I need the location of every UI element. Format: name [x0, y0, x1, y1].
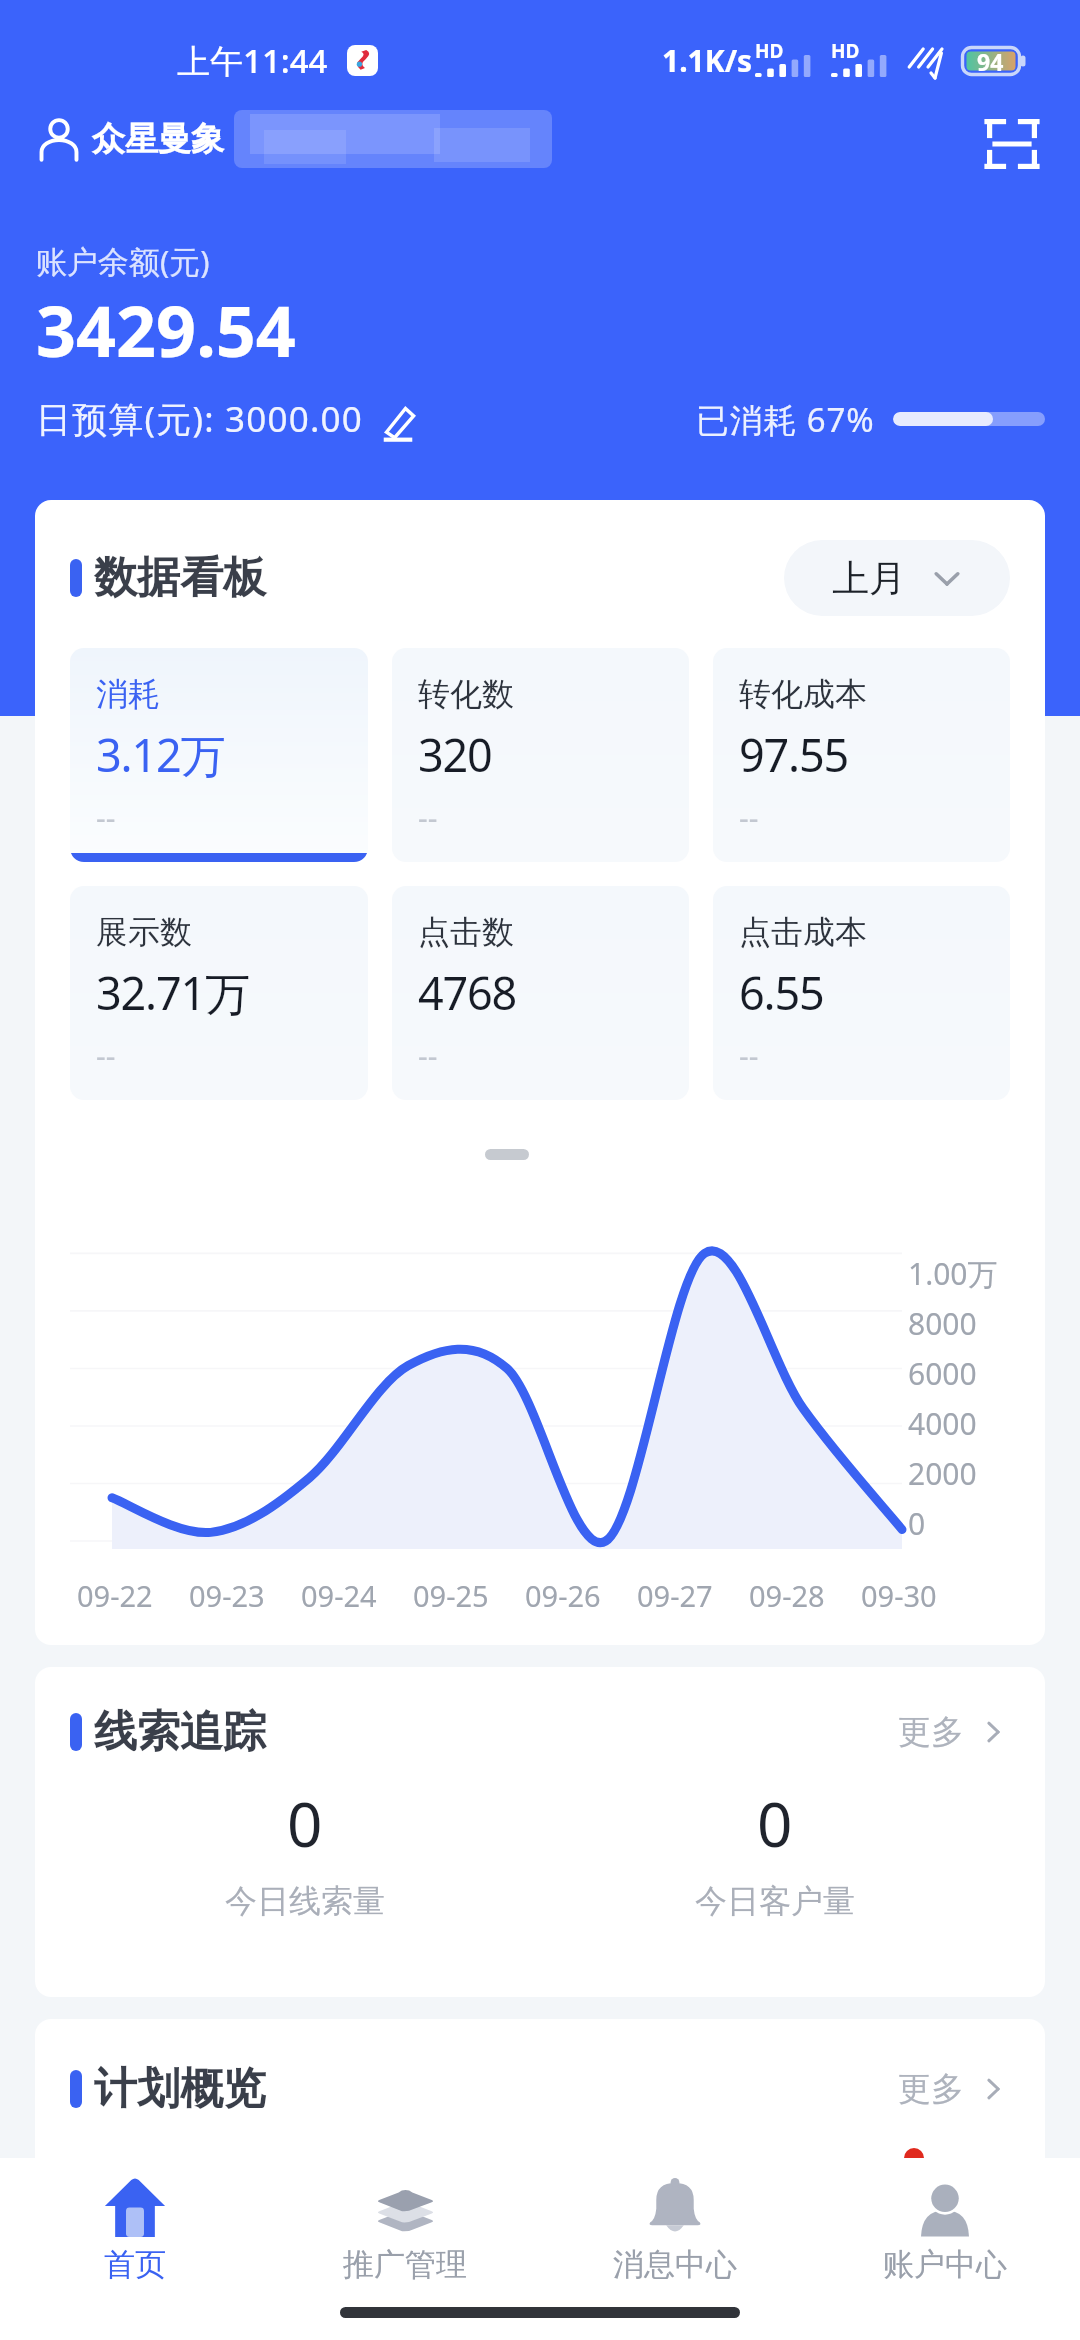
staticText: 8000: [908, 1303, 977, 1344]
staticText: 上月: [832, 555, 906, 602]
staticText: 账户中心: [883, 2245, 1007, 2284]
staticText: 展示数: [96, 912, 192, 952]
staticText: 1.1K/s: [662, 40, 753, 81]
staticText: 09-30: [861, 1576, 937, 1615]
button[interactable]: 点击数: [392, 886, 689, 1100]
staticText: 09-27: [637, 1576, 713, 1615]
button[interactable]: 消耗: [70, 648, 368, 862]
staticText: 计划概览: [94, 2062, 266, 2116]
staticText: 众星曼象: [92, 118, 224, 160]
staticText: 今日客户量: [695, 1881, 855, 1921]
staticText: 已消耗 67%: [696, 397, 875, 442]
staticText: 3429.54: [36, 282, 296, 377]
staticText: 推广管理: [343, 2245, 467, 2284]
button[interactable]: 上月: [784, 540, 1010, 616]
staticText: 今日线索量: [225, 1881, 385, 1921]
staticText: 消息中心: [613, 2245, 737, 2284]
staticText: 6.55: [739, 962, 824, 1023]
button[interactable]: 转化成本: [713, 648, 1010, 862]
staticText: 0: [908, 1503, 926, 1544]
staticText: 日预算(元): 3000.00: [36, 395, 363, 443]
staticText: 2000: [908, 1453, 977, 1494]
staticText: 09-28: [749, 1576, 825, 1615]
staticText: 更多: [898, 1711, 964, 1753]
button[interactable]: Scan QR code: [980, 112, 1044, 176]
button[interactable]: 更多: [888, 2062, 1010, 2116]
staticText: 09-25: [413, 1576, 489, 1615]
staticText: 09-22: [77, 1576, 153, 1615]
staticText: 09-23: [189, 1576, 265, 1615]
staticText: 32.71万: [96, 962, 249, 1023]
button[interactable]: 消息中心: [540, 2158, 810, 2308]
button[interactable]: 点击成本: [713, 886, 1010, 1100]
staticText: 6000: [908, 1353, 977, 1394]
staticText: 97.55: [739, 724, 849, 785]
staticText: --: [739, 1035, 759, 1076]
button[interactable]: 推广管理: [270, 2158, 540, 2308]
staticText: --: [96, 797, 116, 838]
staticText: 320: [418, 724, 492, 785]
staticText: 消耗: [96, 674, 160, 714]
staticText: 94: [977, 46, 1004, 76]
staticText: 更多: [898, 2068, 964, 2110]
staticText: 转化数: [418, 674, 514, 714]
staticText: 数据看板: [94, 551, 266, 605]
staticText: 上午11:44: [177, 38, 328, 83]
staticText: HD: [831, 38, 860, 64]
staticText: --: [418, 1035, 438, 1076]
button[interactable]: 首页: [0, 2158, 270, 2308]
staticText: 4768: [418, 962, 517, 1023]
button[interactable]: 展示数: [70, 886, 368, 1100]
staticText: HD: [755, 38, 784, 64]
button[interactable]: Edit daily budget: [379, 403, 417, 441]
staticText: --: [739, 797, 759, 838]
button[interactable]: 账户中心: [810, 2158, 1080, 2308]
staticText: 0: [757, 1781, 793, 1865]
button[interactable]: 更多: [888, 1705, 1010, 1759]
staticText: 首页: [104, 2245, 166, 2284]
staticText: 账户余额(元): [36, 240, 210, 282]
staticText: 09-26: [525, 1576, 601, 1615]
button[interactable]: 众星曼象: [36, 116, 224, 162]
staticText: 转化成本: [739, 674, 867, 714]
button[interactable]: 转化数: [392, 648, 689, 862]
staticText: 点击成本: [739, 912, 867, 952]
staticText: 点击数: [418, 912, 514, 952]
staticText: 3.12万: [96, 724, 225, 785]
staticText: 线索追踪: [94, 1705, 266, 1759]
staticText: 1.00万: [908, 1253, 998, 1294]
staticText: 09-24: [301, 1576, 377, 1615]
staticText: 0: [287, 1781, 323, 1865]
staticText: --: [96, 1035, 116, 1076]
staticText: 4000: [908, 1403, 977, 1444]
staticText: --: [418, 797, 438, 838]
